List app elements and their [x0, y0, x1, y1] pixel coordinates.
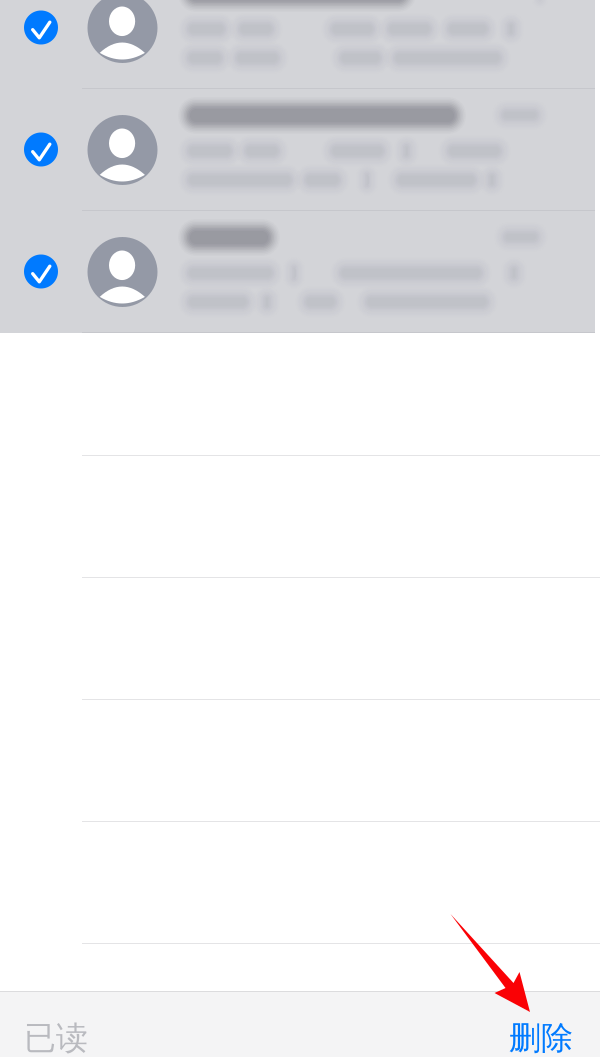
button[interactable]	[0, 944, 600, 1057]
button[interactable]: 删除	[0, 991, 100, 1035]
button[interactable]: 已读	[0, 991, 100, 1035]
button[interactable]	[0, 822, 600, 944]
button[interactable]	[0, 0, 600, 89]
staticText: 删除	[509, 1018, 573, 1057]
button[interactable]	[0, 89, 600, 211]
button[interactable]	[0, 211, 600, 333]
staticText: 已读	[24, 1018, 88, 1057]
